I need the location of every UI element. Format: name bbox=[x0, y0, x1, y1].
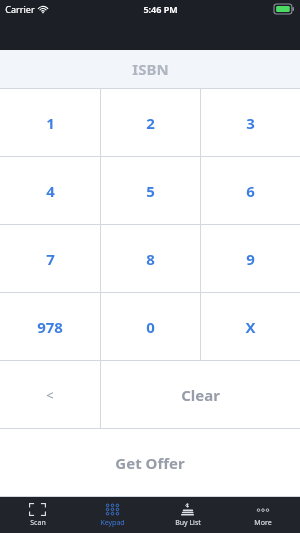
staticText: 5 bbox=[146, 181, 155, 201]
staticText: Keypad bbox=[100, 518, 125, 528]
staticText: 3 bbox=[246, 113, 255, 133]
staticText: 978 bbox=[37, 317, 63, 337]
staticText: Buy List bbox=[175, 518, 201, 528]
button[interactable]: 2 bbox=[101, 89, 200, 156]
button[interactable]: 6 bbox=[201, 157, 300, 224]
staticText: 8 bbox=[146, 249, 155, 269]
staticText: Carrier bbox=[5, 3, 35, 15]
staticText: 2 bbox=[146, 113, 155, 133]
button[interactable]: Backspace bbox=[0, 361, 100, 428]
staticText: 6 bbox=[246, 181, 255, 201]
button[interactable]: More bbox=[225, 497, 300, 533]
button[interactable]: 0 bbox=[101, 293, 200, 360]
staticText: 9 bbox=[246, 249, 255, 269]
staticText: 0 bbox=[146, 317, 155, 337]
staticText: 1 bbox=[46, 113, 55, 133]
button[interactable]: 4 bbox=[0, 157, 100, 224]
staticText: Scan bbox=[30, 518, 46, 528]
staticText: Get Offer bbox=[115, 453, 185, 473]
button[interactable]: Scan bbox=[0, 497, 75, 533]
button[interactable]: Keypad bbox=[75, 497, 150, 533]
button[interactable]: 5 bbox=[101, 157, 200, 224]
button[interactable]: 1 bbox=[0, 89, 100, 156]
button[interactable]: 3 bbox=[201, 89, 300, 156]
button[interactable]: 978 bbox=[0, 293, 100, 360]
staticText: Clear bbox=[181, 385, 220, 405]
button[interactable]: X bbox=[201, 293, 300, 360]
button[interactable]: Buy List bbox=[150, 497, 225, 533]
staticText: ISBN bbox=[132, 59, 169, 79]
staticText: 7 bbox=[46, 249, 55, 269]
staticText: More bbox=[254, 518, 272, 528]
staticText: X bbox=[245, 317, 256, 337]
button[interactable]: 9 bbox=[201, 225, 300, 292]
staticText: 4 bbox=[46, 181, 55, 201]
button[interactable]: 7 bbox=[0, 225, 100, 292]
staticText: < bbox=[46, 386, 54, 404]
button[interactable]: Get Offer bbox=[0, 429, 300, 496]
button[interactable]: Clear bbox=[101, 361, 300, 428]
staticText: 5:46 PM bbox=[143, 3, 178, 15]
button[interactable]: 8 bbox=[101, 225, 200, 292]
